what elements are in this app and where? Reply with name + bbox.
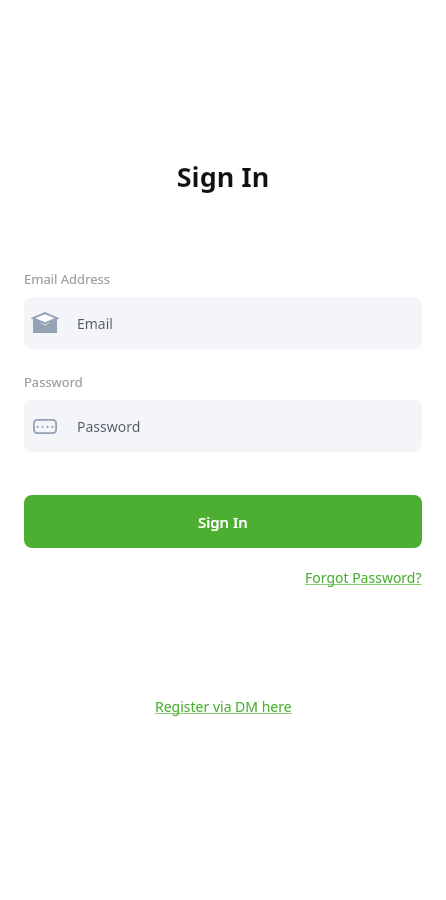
button[interactable]: Sign In xyxy=(24,495,422,548)
button[interactable]: Email xyxy=(24,297,422,349)
button[interactable]: Password xyxy=(24,400,422,452)
staticText: Email xyxy=(77,314,113,333)
staticText: Password xyxy=(77,417,141,436)
staticText: Password xyxy=(24,373,83,391)
staticText: Register via DM here xyxy=(155,697,292,716)
staticText: Forgot Password? xyxy=(305,568,422,587)
staticText: Email Address xyxy=(24,270,110,288)
button[interactable]: Forgot Password? xyxy=(305,568,422,587)
button[interactable]: Register via DM here xyxy=(155,697,292,716)
staticText: Sign In xyxy=(198,512,248,532)
staticText: Sign In xyxy=(24,158,422,195)
